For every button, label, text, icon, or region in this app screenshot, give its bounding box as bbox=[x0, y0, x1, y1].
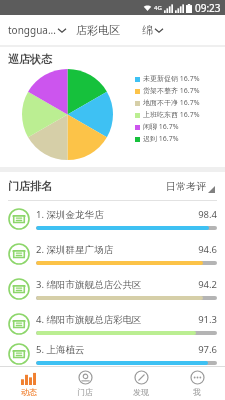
staticText: 动态 bbox=[21, 387, 37, 397]
staticText: 地面不干净 16.7% bbox=[143, 98, 200, 108]
staticText: 上班吃东西 16.7% bbox=[143, 110, 200, 120]
button[interactable]: 3. 绵阳市旗舰总店公共区 bbox=[0, 271, 225, 306]
staticText: 94.6 bbox=[198, 243, 217, 256]
staticText: 迟到 16.7% bbox=[143, 134, 179, 144]
staticText: 日常考评 bbox=[166, 180, 206, 193]
button[interactable]: 2. 深圳群星广场店 bbox=[0, 236, 225, 271]
staticText: 我 bbox=[193, 387, 201, 397]
staticText: 98.4 bbox=[198, 208, 217, 221]
staticText: 91.3 bbox=[198, 313, 217, 326]
staticText: 货架不整齐 16.7% bbox=[143, 86, 200, 96]
button[interactable]: 绵 bbox=[142, 23, 163, 37]
staticText: 发现 bbox=[133, 387, 149, 397]
staticText: 5. 上海植云 bbox=[36, 343, 85, 356]
button[interactable]: 日常考评 bbox=[164, 178, 217, 195]
staticText: 巡店状态 bbox=[8, 52, 52, 66]
staticText: 4G bbox=[154, 4, 162, 12]
staticText: 94.2 bbox=[198, 278, 217, 291]
button[interactable]: 1. 深圳金龙华店 bbox=[0, 201, 225, 236]
staticText: 4. 绵阳市旗舰总店彩电区 bbox=[36, 313, 142, 326]
staticText: 未更新促销 16.7% bbox=[143, 74, 200, 84]
button[interactable]: 门店 bbox=[57, 367, 113, 400]
button[interactable]: 5. 上海植云 bbox=[0, 341, 225, 366]
button[interactable]: 4. 绵阳市旗舰总店彩电区 bbox=[0, 306, 225, 341]
staticText: 门店 bbox=[77, 387, 93, 397]
staticText: tonggua... bbox=[8, 23, 56, 37]
staticText: 绵 bbox=[142, 23, 153, 37]
button[interactable]: 发现 bbox=[113, 367, 169, 400]
staticText: 2. 深圳群星广场店 bbox=[36, 243, 113, 256]
button[interactable]: tonggua... bbox=[8, 23, 66, 37]
button[interactable]: 动态 bbox=[0, 367, 57, 400]
staticText: 门店排名 bbox=[8, 179, 52, 193]
staticText: 1. 深圳金龙华店 bbox=[36, 208, 104, 221]
button[interactable]: 我 bbox=[169, 367, 225, 400]
staticText: 闲聊 16.7% bbox=[143, 122, 179, 132]
staticText: 3. 绵阳市旗舰总店公共区 bbox=[36, 278, 142, 291]
staticText: 97.6 bbox=[198, 343, 217, 356]
staticText: 09:23 bbox=[195, 1, 221, 15]
staticText: 店彩电区 bbox=[76, 23, 120, 37]
